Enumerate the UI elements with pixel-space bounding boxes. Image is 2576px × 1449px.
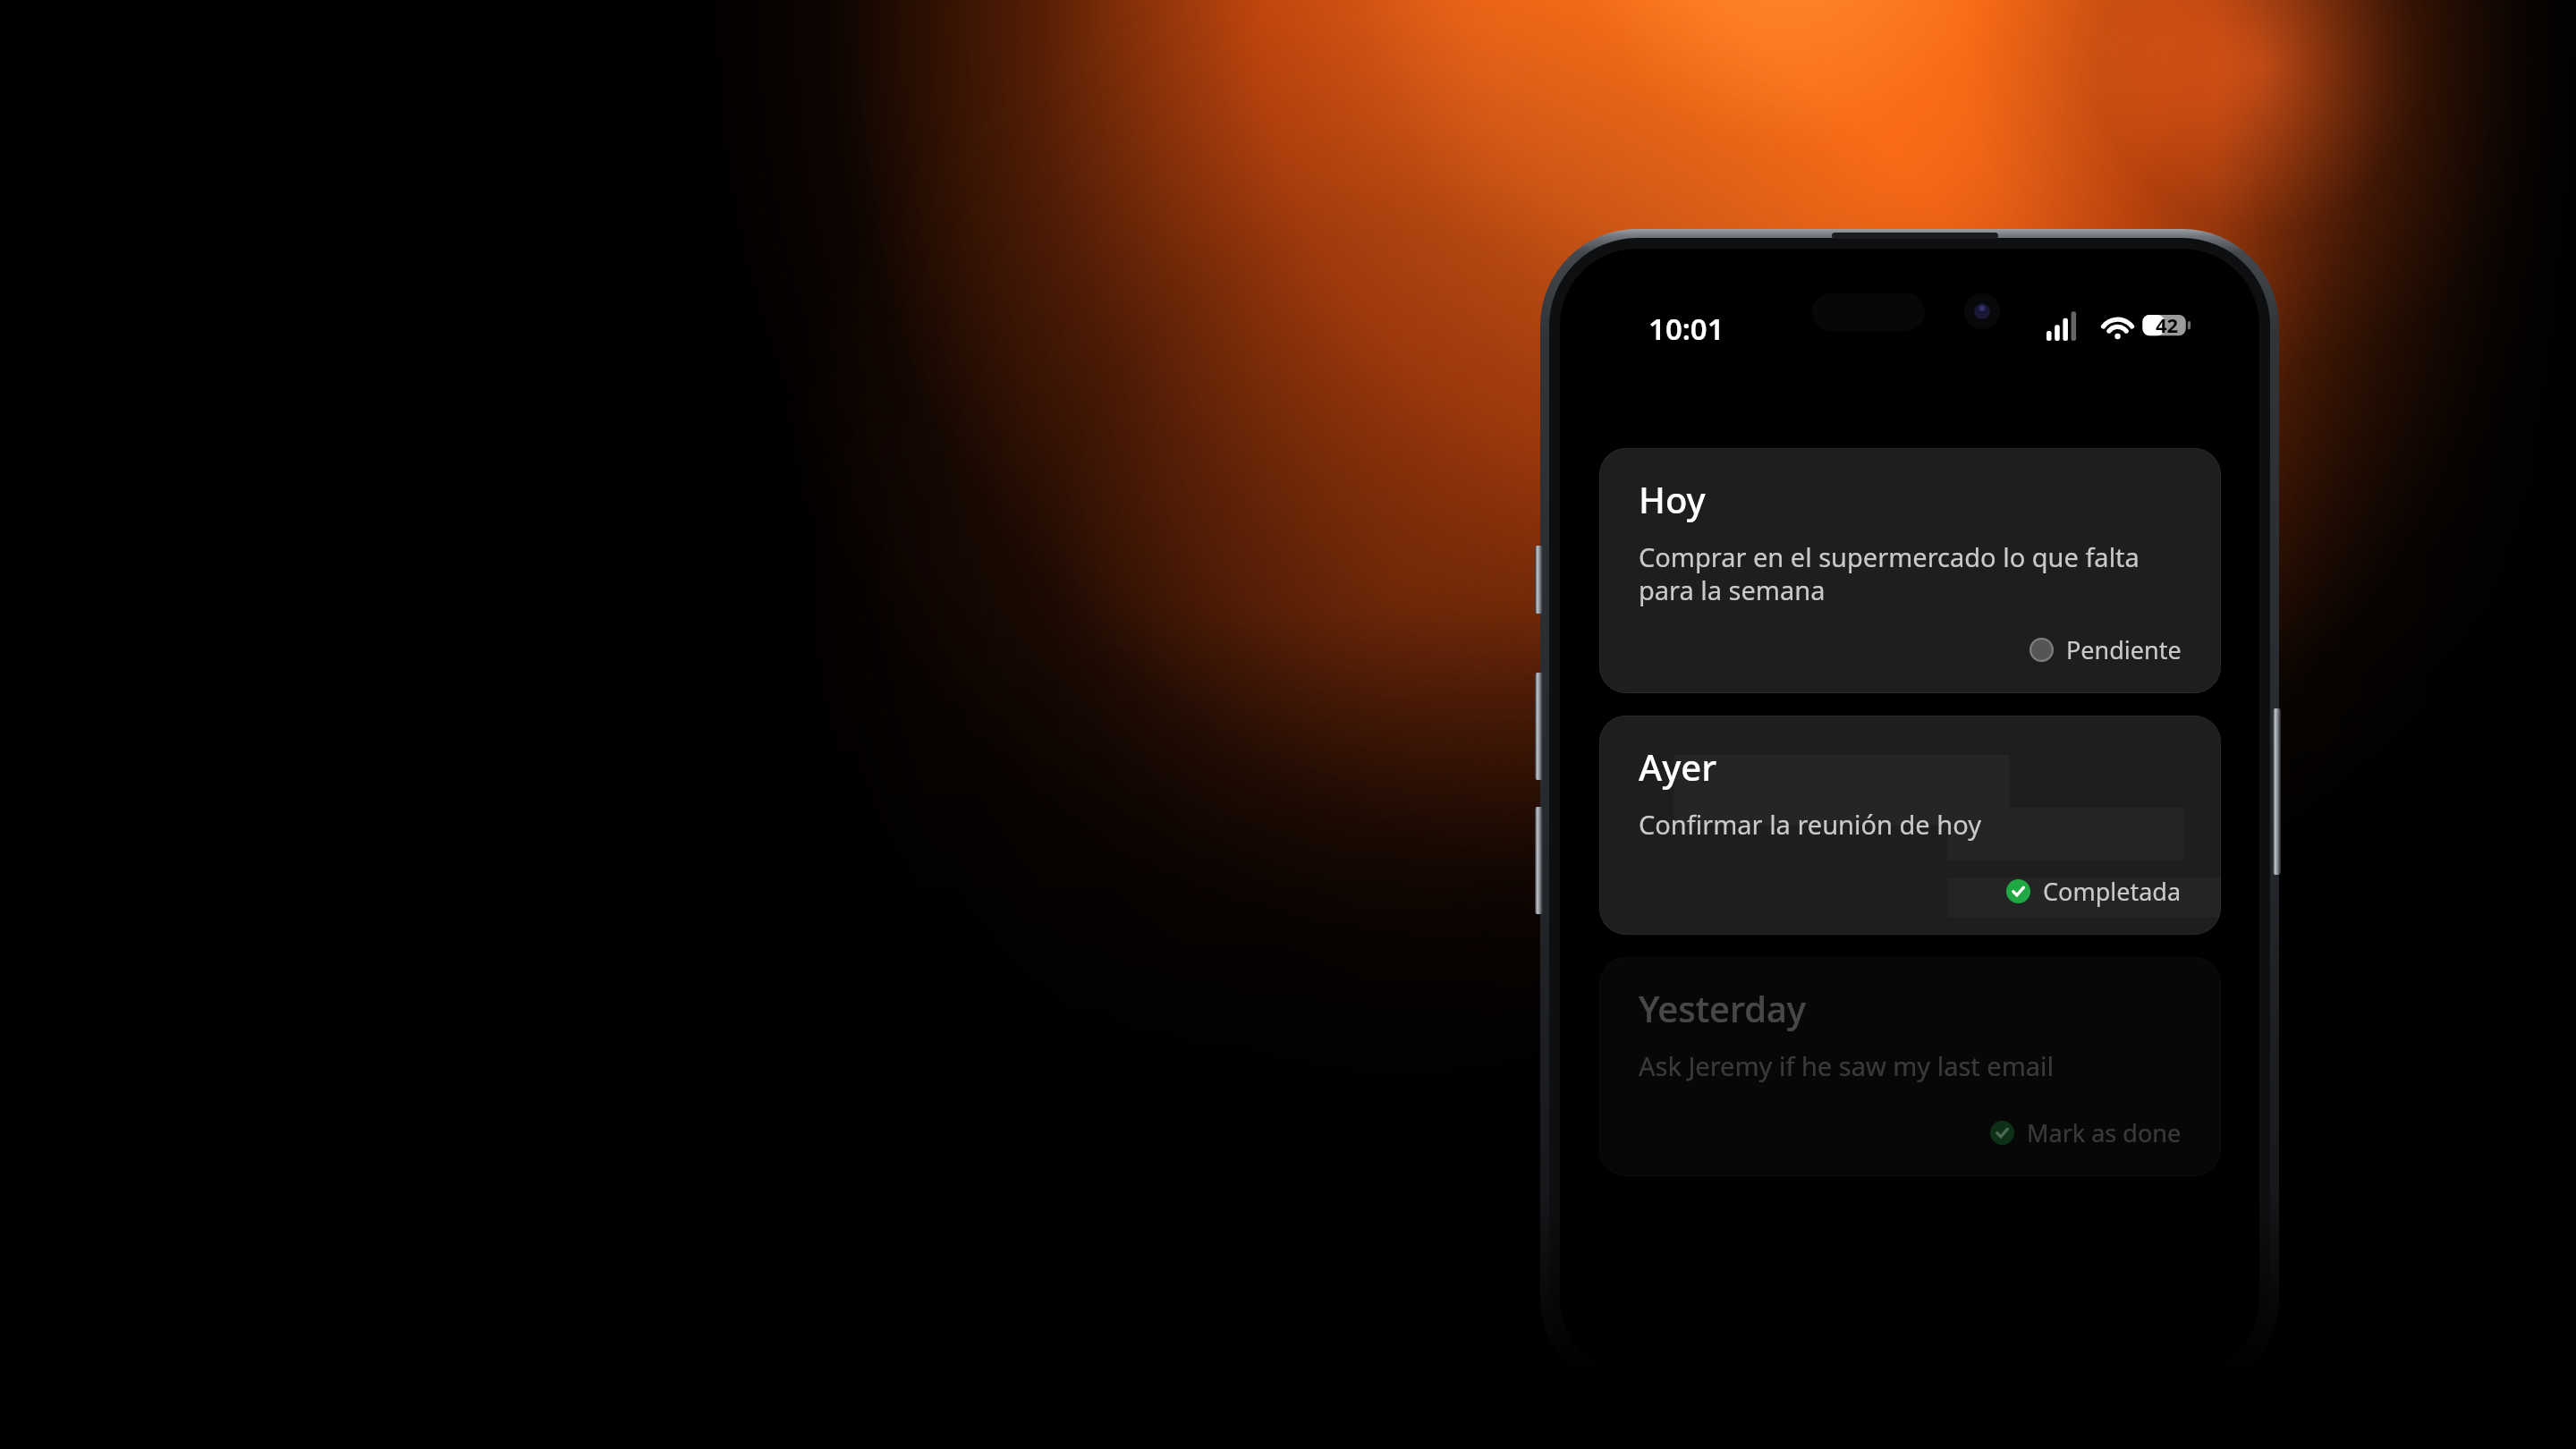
other: Pendiente [2029, 638, 2054, 662]
other: Completada [2006, 879, 2030, 903]
staticText: Hoy [1639, 475, 1706, 523]
staticText: Yesterday [1639, 984, 1806, 1032]
staticText: Ayer [1639, 742, 1717, 791]
staticText: Ask Jeremy if he saw my last email [1639, 1048, 2055, 1083]
staticText: Pendiente [2066, 633, 2182, 666]
button[interactable]: Mark as done [1639, 1116, 2182, 1149]
staticText: 10:01 [1648, 309, 1724, 349]
staticText: Mark as done [2027, 1116, 2182, 1149]
button[interactable]: Pendiente [1639, 633, 2182, 666]
button[interactable]: Ayer [1599, 716, 2221, 935]
staticText: Comprar en el supermercado lo que falta … [1639, 539, 2140, 608]
button[interactable]: Yesterday [1599, 957, 2221, 1176]
staticText: Completada [2043, 875, 2182, 908]
other: Mark as done [1990, 1121, 2014, 1145]
button[interactable]: Completada [1639, 875, 2182, 908]
staticText: 42 [2156, 311, 2179, 338]
button[interactable]: Hoy [1599, 448, 2221, 693]
staticText: Confirmar la reunión de hoy [1639, 807, 1981, 842]
